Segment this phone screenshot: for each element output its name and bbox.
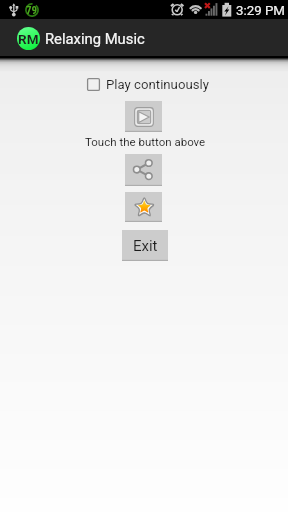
button[interactable]: Play continuously [87,77,209,92]
staticText: 79 [26,4,38,17]
staticText: Relaxing Music [45,30,145,47]
staticText: Touch the button above [85,135,206,148]
button[interactable]: Rate [125,192,162,222]
staticText: RM [18,31,39,47]
button[interactable]: Share [125,154,162,186]
staticText: Play continuously [106,77,209,92]
staticText: 3:29 PM [236,3,285,19]
button[interactable]: Play [125,101,162,132]
button[interactable]: Exit [122,230,168,261]
staticText: Exit [133,237,158,255]
